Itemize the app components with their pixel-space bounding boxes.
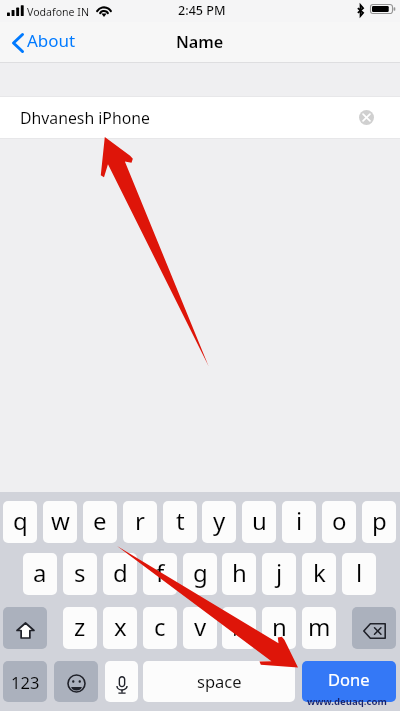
staticText: 123: [11, 671, 40, 693]
staticText: k: [313, 556, 326, 589]
button[interactable]: y: [202, 501, 236, 543]
button[interactable]: n: [262, 607, 296, 649]
staticText: j: [276, 556, 283, 589]
button[interactable]: z: [63, 607, 97, 649]
staticText: e: [93, 504, 107, 537]
button[interactable]: a: [23, 553, 57, 595]
button[interactable]: f: [143, 553, 177, 595]
button[interactable]: Shift: [3, 607, 47, 649]
staticText: a: [33, 556, 47, 589]
button[interactable]: h: [222, 553, 256, 595]
button[interactable]: t: [163, 501, 197, 543]
button[interactable]: c: [143, 607, 177, 649]
button[interactable]: u: [242, 501, 276, 543]
button[interactable]: About: [0, 31, 84, 54]
button[interactable]: Dictation: [105, 661, 138, 702]
button[interactable]: o: [322, 501, 356, 543]
button[interactable]: space: [143, 661, 295, 702]
button[interactable]: k: [302, 553, 336, 595]
staticText: space: [197, 670, 242, 692]
button[interactable]: 123: [3, 661, 47, 702]
button[interactable]: l: [342, 553, 376, 595]
staticText: b: [232, 610, 247, 643]
staticText: g: [193, 556, 208, 589]
button[interactable]: e: [83, 501, 117, 543]
button[interactable]: s: [63, 553, 97, 595]
staticText: Name: [176, 31, 224, 53]
button[interactable]: i: [282, 501, 316, 543]
button[interactable]: v: [183, 607, 217, 649]
staticText: v: [194, 610, 207, 643]
staticText: 2:45 PM: [178, 2, 226, 19]
staticText: w: [51, 504, 70, 537]
staticText: c: [154, 610, 166, 643]
staticText: q: [13, 504, 28, 537]
staticText: p: [372, 504, 387, 537]
staticText: Vodafone IN: [27, 5, 89, 19]
button[interactable]: j: [262, 553, 296, 595]
staticText: f: [156, 556, 165, 589]
staticText: r: [135, 504, 145, 537]
staticText: www.deuaq.com: [307, 695, 387, 708]
button[interactable]: x: [103, 607, 137, 649]
button[interactable]: g: [183, 553, 217, 595]
button[interactable]: r: [123, 501, 157, 543]
staticText: s: [74, 556, 86, 589]
staticText: n: [272, 610, 287, 643]
button[interactable]: q: [3, 501, 37, 543]
button[interactable]: Clear text: [359, 110, 374, 125]
button[interactable]: Done: [302, 661, 396, 702]
staticText: z: [74, 610, 86, 643]
staticText: m: [308, 610, 331, 643]
button[interactable]: p: [362, 501, 396, 543]
staticText: About: [27, 29, 76, 52]
staticText: i: [296, 504, 303, 537]
button[interactable]: Emoji: [54, 661, 98, 702]
staticText: d: [113, 556, 128, 589]
button[interactable]: w: [43, 501, 77, 543]
staticText: t: [176, 504, 185, 537]
button[interactable]: Backspace: [352, 607, 396, 649]
staticText: Done: [328, 668, 370, 690]
staticText: Dhvanesh iPhone: [20, 107, 150, 129]
staticText: x: [114, 610, 127, 643]
button[interactable]: b: [222, 607, 256, 649]
staticText: u: [252, 504, 267, 537]
staticText: l: [356, 556, 363, 589]
staticText: h: [232, 556, 247, 589]
button[interactable]: m: [302, 607, 336, 649]
button[interactable]: d: [103, 553, 137, 595]
staticText: y: [213, 504, 226, 537]
button[interactable]: Dhvanesh iPhone: [0, 96, 400, 139]
staticText: o: [332, 504, 347, 537]
